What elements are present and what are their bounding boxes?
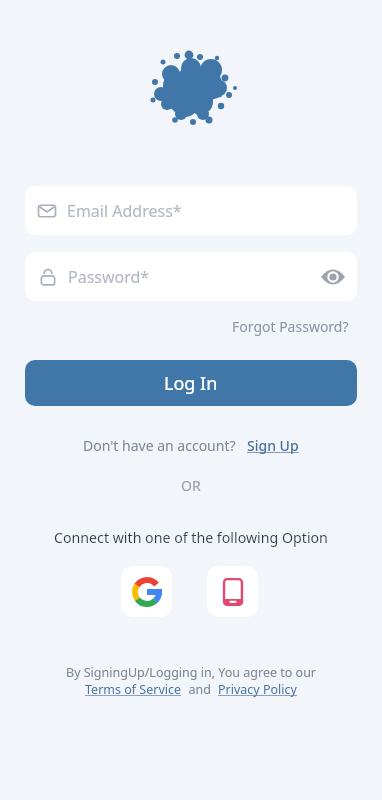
staticText: Privacy Policy — [218, 681, 297, 698]
button[interactable]: Log In — [25, 360, 357, 406]
button[interactable]: Password* — [25, 252, 357, 301]
staticText: Forgot Password? — [232, 317, 349, 336]
staticText: and — [182, 681, 218, 698]
staticText: Sign Up — [247, 436, 299, 455]
staticText: Email Address* — [67, 200, 182, 222]
button[interactable] — [207, 566, 258, 617]
button[interactable]: Terms of Service — [85, 681, 182, 698]
staticText: By SigningUp/Logging in, You agree to ou… — [66, 664, 317, 681]
button[interactable] — [321, 265, 345, 289]
staticText: Connect with one of the following Option — [54, 528, 328, 547]
button[interactable]: Email Address* — [25, 186, 357, 235]
staticText: OR — [181, 476, 201, 495]
button[interactable] — [121, 566, 172, 617]
staticText: Don't have an account? — [83, 436, 236, 455]
button[interactable]: Forgot Password? — [232, 317, 349, 336]
staticText: Log In — [164, 371, 218, 396]
button[interactable]: Privacy Policy — [218, 681, 297, 698]
staticText: Terms of Service — [85, 681, 182, 698]
staticText: Password* — [68, 266, 150, 288]
button[interactable]: Sign Up — [247, 436, 299, 455]
